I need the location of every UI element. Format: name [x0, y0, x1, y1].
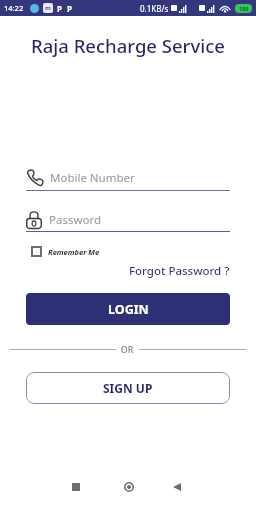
button[interactable]	[124, 482, 134, 492]
staticText: P	[67, 3, 72, 14]
staticText: Raja Recharge Service	[31, 33, 225, 58]
staticText: OR	[116, 343, 139, 355]
staticText: SIGN UP	[103, 380, 153, 396]
staticText: LOGIN	[108, 301, 149, 318]
staticText: Password	[49, 212, 102, 228]
button[interactable]: Remember Me	[26, 246, 100, 257]
staticText: Remember Me	[48, 247, 100, 257]
staticText: Forgot Password ?	[129, 263, 230, 279]
button[interactable]	[173, 483, 181, 491]
staticText: m	[45, 4, 51, 12]
staticText: 0.1KB/s	[140, 3, 169, 14]
button[interactable]: LOGIN	[26, 293, 230, 325]
button[interactable]: SIGN UP	[26, 372, 230, 404]
staticText: 100	[239, 5, 249, 12]
button[interactable]: Forgot Password ?	[129, 263, 230, 279]
staticText: P	[57, 3, 62, 14]
staticText: Mobile Number	[50, 170, 135, 186]
staticText: 14:22	[4, 3, 24, 13]
